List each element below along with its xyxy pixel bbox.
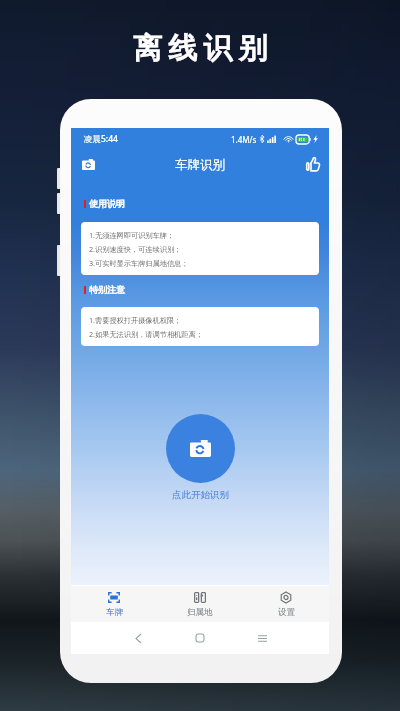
button[interactable]: 相机 (75, 151, 101, 177)
button[interactable]: 点赞 (299, 151, 325, 177)
button[interactable]: 归属地 (157, 586, 243, 623)
staticText: 车牌 (106, 607, 123, 618)
button[interactable]: 菜单 (253, 629, 271, 647)
staticText: 离线识别 (133, 30, 274, 67)
staticText: 2.如果无法识别，请调节相机距离； (89, 329, 203, 339)
button[interactable]: 1.无须连网即可识别车牌； (81, 222, 319, 275)
staticText: 凌晨5:44 (84, 133, 118, 145)
button[interactable]: 设置 (243, 586, 329, 623)
staticText: 1.4M/s (231, 134, 257, 145)
staticText: 3.可实时显示车牌归属地信息； (89, 258, 189, 268)
staticText: 设置 (278, 607, 295, 618)
button[interactable]: 主页 (191, 629, 209, 647)
staticText: 车牌识别 (175, 157, 225, 173)
staticText: 1.需要授权打开摄像机权限； (89, 315, 182, 325)
staticText: 2.识别速度快，可连续识别； (89, 244, 182, 254)
staticText: 1.无须连网即可识别车牌； (89, 230, 175, 240)
button[interactable]: 返回 (129, 629, 147, 647)
staticText: 点此开始识别 (172, 489, 229, 501)
button[interactable]: 点此开始识别 (166, 414, 235, 483)
button[interactable]: 1.需要授权打开摄像机权限； (81, 307, 319, 346)
staticText: 特别注意 (89, 284, 125, 295)
staticText: 归属地 (187, 607, 213, 618)
button[interactable]: 车牌 (71, 586, 157, 623)
staticText: 使用说明 (89, 198, 125, 209)
